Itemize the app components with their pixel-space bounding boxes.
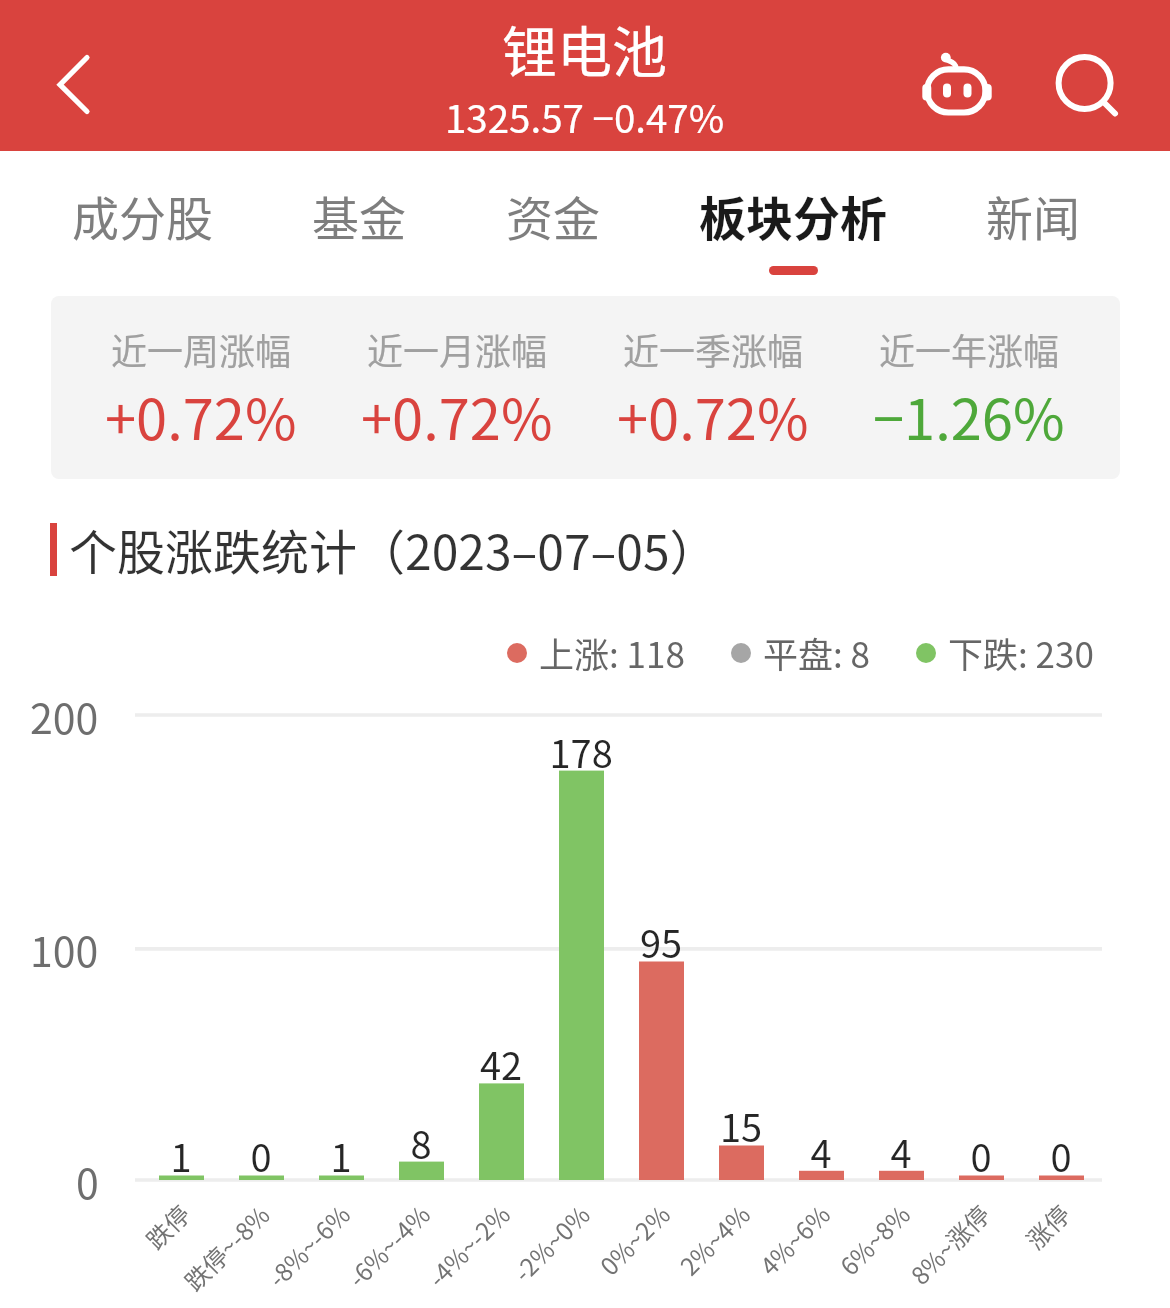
staticText: 近一周涨幅 bbox=[111, 323, 292, 375]
staticText: 成分股 bbox=[72, 181, 213, 249]
staticText: +0.72% bbox=[617, 375, 809, 456]
staticText: 平盘: 8 bbox=[763, 627, 870, 678]
staticText: 1325.57 −0.47% bbox=[445, 88, 725, 144]
button[interactable]: AI assistant bbox=[897, 27, 1017, 147]
staticText: 个股涨跌统计（2023–07–05） bbox=[69, 514, 718, 584]
staticText: 近一月涨幅 bbox=[367, 323, 548, 375]
staticText: 资金 bbox=[506, 181, 600, 249]
staticText: 基金 bbox=[312, 181, 406, 249]
staticText: 板块分析 bbox=[699, 181, 887, 249]
button[interactable]: Back bbox=[0, 0, 141, 151]
staticText: 锂电池 bbox=[502, 8, 668, 88]
staticText: 上涨: 118 bbox=[539, 627, 685, 678]
button[interactable]: Search bbox=[1025, 23, 1145, 143]
button[interactable]: 成分股 bbox=[72, 151, 213, 275]
button[interactable]: 板块分析 bbox=[699, 151, 887, 275]
staticText: 近一年涨幅 bbox=[879, 323, 1060, 375]
staticText: +0.72% bbox=[105, 375, 297, 456]
button[interactable]: 新闻 bbox=[986, 151, 1080, 275]
staticText: −1.26% bbox=[873, 375, 1065, 456]
button[interactable]: 资金 bbox=[506, 151, 600, 275]
staticText: 下跌: 230 bbox=[948, 627, 1094, 678]
staticText: +0.72% bbox=[361, 375, 553, 456]
staticText: 近一季涨幅 bbox=[623, 323, 804, 375]
staticText: 新闻 bbox=[986, 181, 1080, 249]
button[interactable]: 基金 bbox=[312, 151, 406, 275]
